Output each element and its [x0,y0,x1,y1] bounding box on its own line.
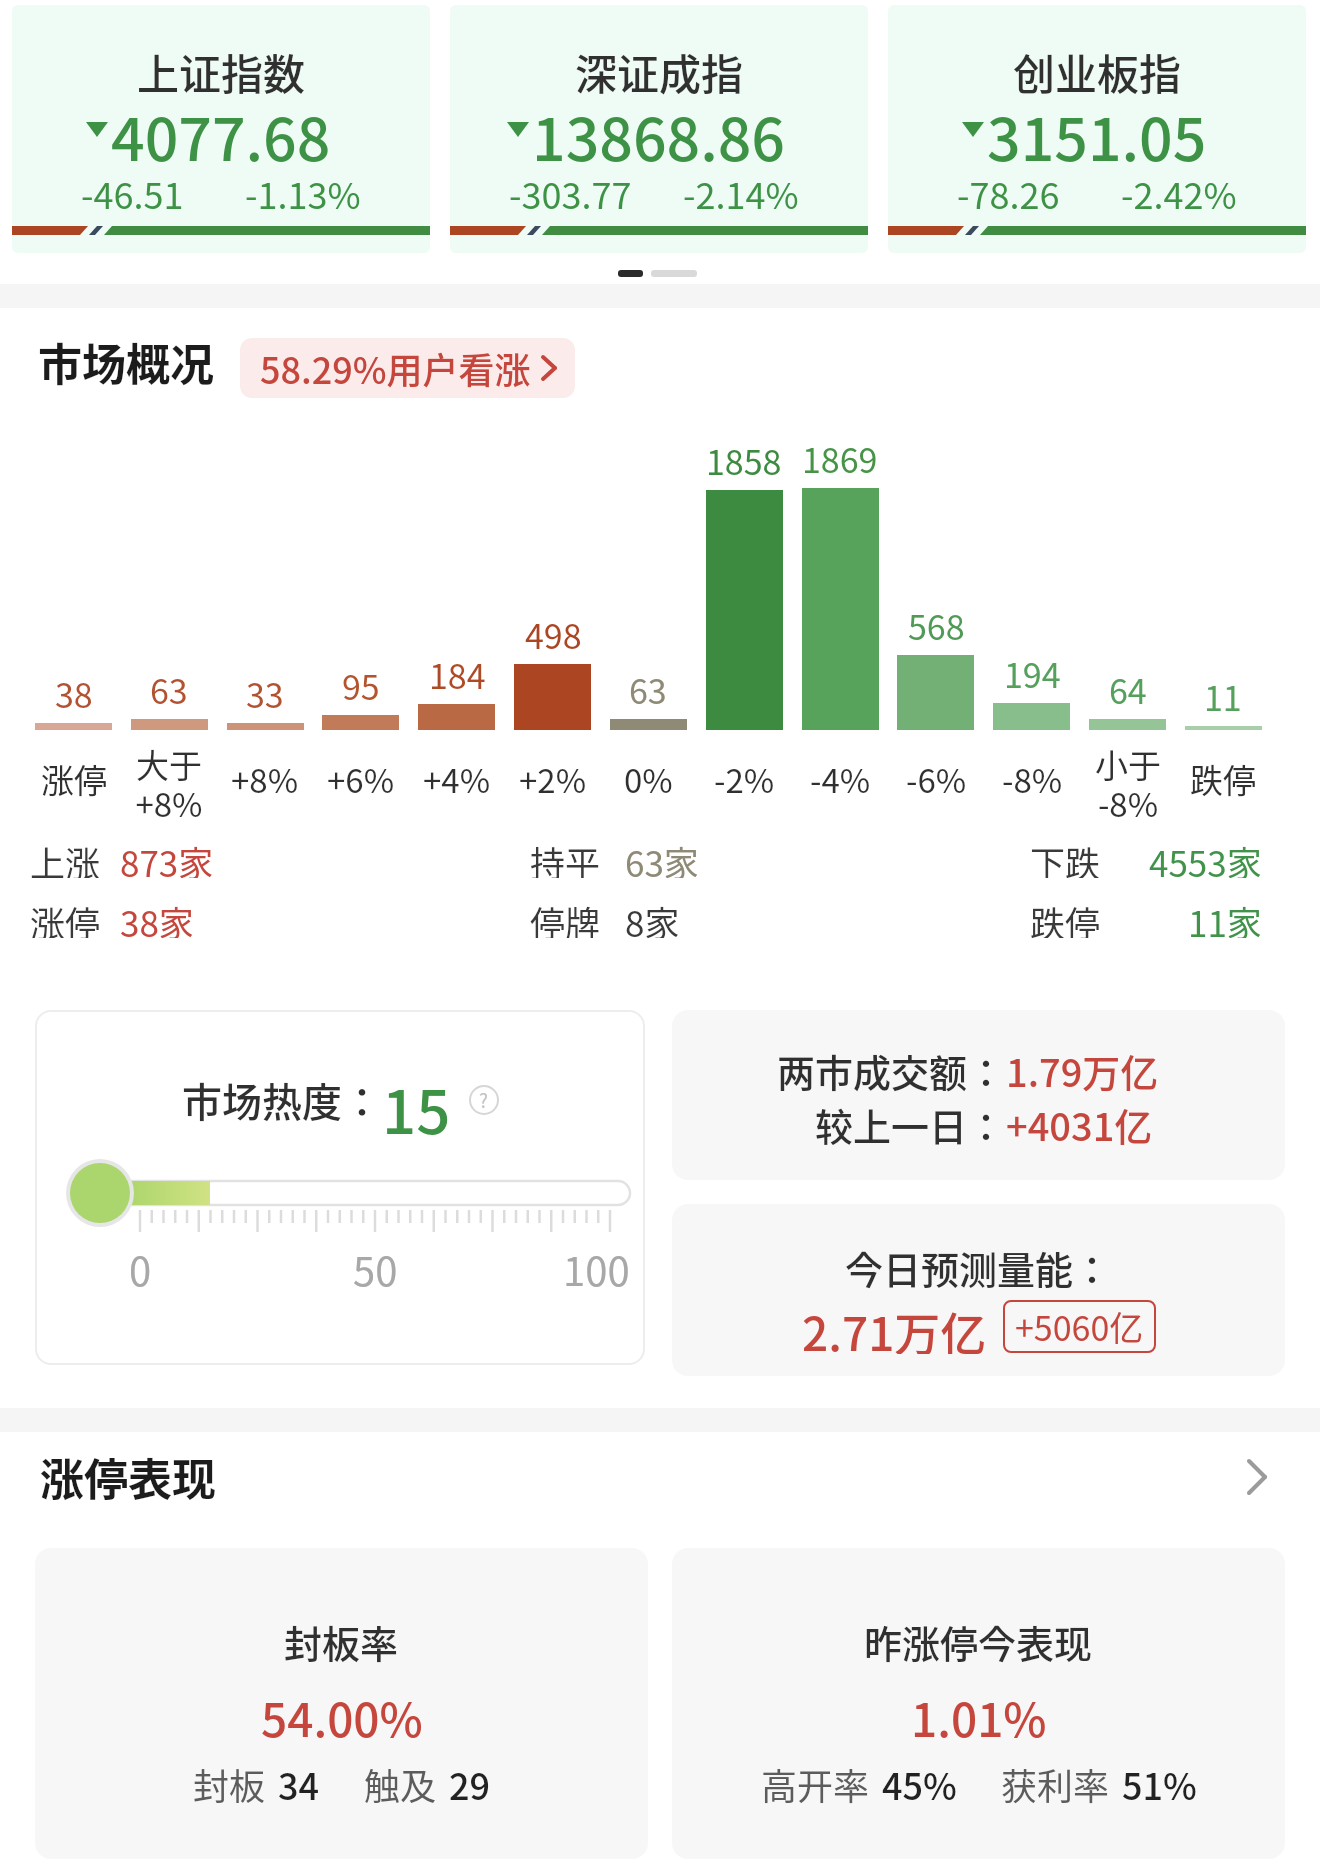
staticText: 3151.05 [987,93,1207,163]
staticText: +8% [231,755,299,799]
staticText: 封板率 [284,1614,399,1664]
staticText: -8% [1002,755,1063,799]
staticText: 高开率 [761,1758,870,1806]
button[interactable]: 涨停表现 [0,1445,1320,1509]
staticText: 54.00% [261,1684,423,1740]
staticText: 停牌 [530,896,601,938]
button[interactable]: ? [469,1085,499,1115]
staticText: -6% [906,755,967,799]
staticText: 两市成交额： [777,1043,1006,1093]
staticText: 95 [342,661,380,707]
staticText: -4% [810,755,871,799]
staticText: 0 [129,1240,152,1288]
staticText: +4% [423,755,491,799]
button[interactable]: 市场热度： [35,1010,645,1365]
staticText: 568 [908,601,965,647]
staticText: 4077.68 [111,93,331,163]
staticText: 58.29%用户看涨 [260,342,531,394]
staticText: 获利率 [1001,1758,1110,1806]
staticText: +2% [519,755,587,799]
staticText: 11家 [1188,896,1262,938]
staticText: 8家 [625,896,680,938]
staticText: 大于 +8% [135,740,203,820]
staticText: 11 [1204,672,1242,718]
staticText: 持平 [530,836,601,878]
staticText: ? [479,1086,489,1114]
button[interactable]: 58.29%用户看涨 [240,338,575,398]
staticText: 51% [1122,1758,1197,1806]
staticText: 498 [525,610,582,656]
staticText: 创业板指 [1013,41,1182,102]
staticText: 封板 [193,1758,266,1806]
staticText: +5060亿 [1015,1302,1144,1351]
staticText: 100 [563,1240,630,1288]
staticText: 38 [55,669,93,715]
staticText: 较上一日： [815,1097,1006,1147]
staticText: 1869 [802,434,878,480]
staticText: 29 [449,1758,491,1806]
staticText: 0% [624,755,673,799]
staticText: 64 [1109,665,1147,711]
staticText: -2% [714,755,775,799]
staticText: 今日预测量能： [845,1240,1112,1290]
staticText: -1.13% [245,167,361,211]
staticText: 1.79万亿 [1006,1043,1159,1093]
staticText: 触及 [364,1758,437,1806]
staticText: -2.42% [1121,167,1237,211]
button[interactable]: 深证成指 [450,5,868,253]
staticText: 涨停表现 [40,1445,216,1509]
button[interactable]: 两市成交额： [672,1010,1285,1180]
staticText: 63 [150,665,188,711]
staticText: 63家 [625,836,699,878]
staticText: 涨停 [41,755,107,799]
staticText: 34 [278,1758,320,1806]
staticText: -2.14% [683,167,799,211]
button[interactable]: 上证指数 [12,5,430,253]
staticText: 50 [353,1240,398,1288]
staticText: -46.51 [81,167,184,211]
staticText: 45% [882,1758,957,1806]
staticText: 跌停 [1030,896,1101,938]
button[interactable]: 创业板指 [888,5,1306,253]
staticText: 1.01% [911,1684,1047,1740]
staticText: 4553家 [1149,836,1262,878]
staticText: 昨涨停今表现 [864,1614,1093,1664]
staticText: 市场概况 [38,330,214,394]
button[interactable]: 封板率 [35,1548,648,1859]
staticText: 873家 [120,836,214,878]
staticText: 184 [429,650,486,696]
staticText: 38家 [120,896,194,938]
staticText: 194 [1004,649,1061,695]
staticText: 上证指数 [137,41,306,102]
staticText: 33 [246,669,284,715]
staticText: 小于 -8% [1095,740,1161,820]
staticText: -78.26 [957,167,1060,211]
staticText: 涨停 [30,896,101,938]
button[interactable]: 昨涨停今表现 [672,1548,1285,1859]
staticText: 上涨 [30,836,101,878]
staticText: 1858 [706,436,782,482]
staticText: +6% [327,755,395,799]
staticText: 跌停 [1190,755,1256,799]
staticText: 市场热度： [182,1071,382,1129]
staticText: 下跌 [1030,836,1101,878]
staticText: -303.77 [509,167,632,211]
button[interactable]: 今日预测量能： [672,1204,1285,1376]
staticText: 13868.86 [532,93,785,163]
staticText: 2.71万亿 [802,1298,987,1354]
staticText: 63 [629,665,667,711]
staticText: 深证成指 [575,41,744,102]
staticText: +4031亿 [1006,1097,1153,1147]
staticText: 15 [382,1064,451,1136]
